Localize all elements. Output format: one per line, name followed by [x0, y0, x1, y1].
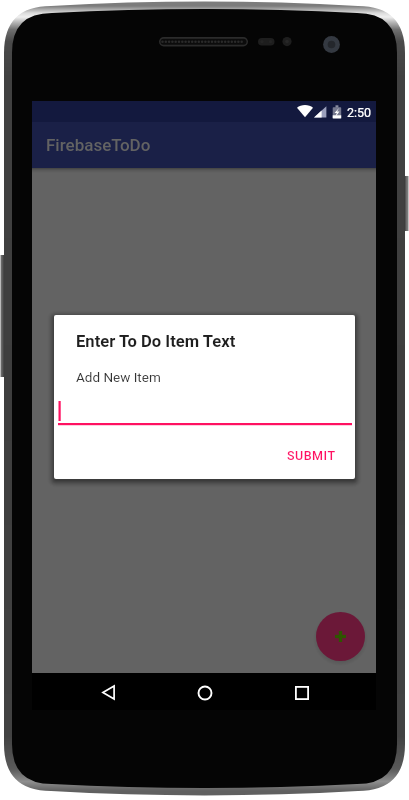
staticText: FirebaseToDo	[46, 135, 151, 155]
button[interactable]: Add item	[316, 612, 365, 661]
button[interactable]: Home	[181, 675, 229, 711]
staticText: Add New Item	[76, 369, 161, 385]
button[interactable]: Recent apps	[278, 675, 326, 711]
button[interactable]: Back	[84, 674, 132, 710]
staticText: SUBMIT	[287, 448, 336, 463]
staticText: 2:50	[347, 105, 372, 120]
button[interactable]: SUBMIT	[282, 444, 340, 466]
staticText: Enter To Do Item Text	[76, 332, 236, 351]
